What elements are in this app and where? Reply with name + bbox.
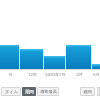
other: Monthly bar chart [0, 0, 100, 100]
staticText: 2月 [76, 72, 83, 78]
staticText: 価格最高 [40, 89, 57, 94]
button[interactable]: More options [97, 87, 100, 96]
button[interactable]: タイム [1, 87, 21, 96]
staticText: 期間 [25, 89, 34, 94]
staticText: タイム [5, 89, 18, 94]
button[interactable]: 週間 [80, 87, 95, 96]
staticText: 5月 [93, 72, 100, 78]
staticText: 12月 [28, 72, 37, 78]
button[interactable]: 期間 [22, 87, 36, 96]
staticText: 2020年1月 [45, 72, 66, 78]
button[interactable]: 価格最高 [37, 87, 59, 96]
staticText: 月 [8, 72, 13, 77]
staticText: 週間 [83, 89, 92, 94]
